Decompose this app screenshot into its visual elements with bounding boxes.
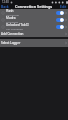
staticText: Unlocked Tab II [6,23,29,27]
staticText: Connection Settings [15,4,53,9]
staticText: Not Connected [6,27,23,30]
staticText: Select Logger [1,41,65,45]
button[interactable]: Mudra [0,16,68,23]
button[interactable]: Edit [59,4,68,9]
button[interactable]: Back [0,4,10,9]
staticText: Edit [60,4,67,9]
button[interactable]: Flash [0,9,68,16]
button[interactable]: Toggle [56,18,64,22]
staticText: Mudra [6,16,16,20]
staticText: Add Connection [1,32,65,36]
button[interactable]: Toggle [56,25,64,29]
staticText: Back [1,4,9,9]
button[interactable]: Select Logger [0,39,68,47]
staticText: Connecting [6,13,19,16]
staticText: Flash [6,9,14,13]
button[interactable]: Toggle [56,11,64,15]
staticText: 12:30 [2,0,9,4]
staticText: Connected [6,20,19,23]
button[interactable]: Add Connection [0,30,68,37]
button[interactable]: Unlocked Tab II [0,23,68,30]
